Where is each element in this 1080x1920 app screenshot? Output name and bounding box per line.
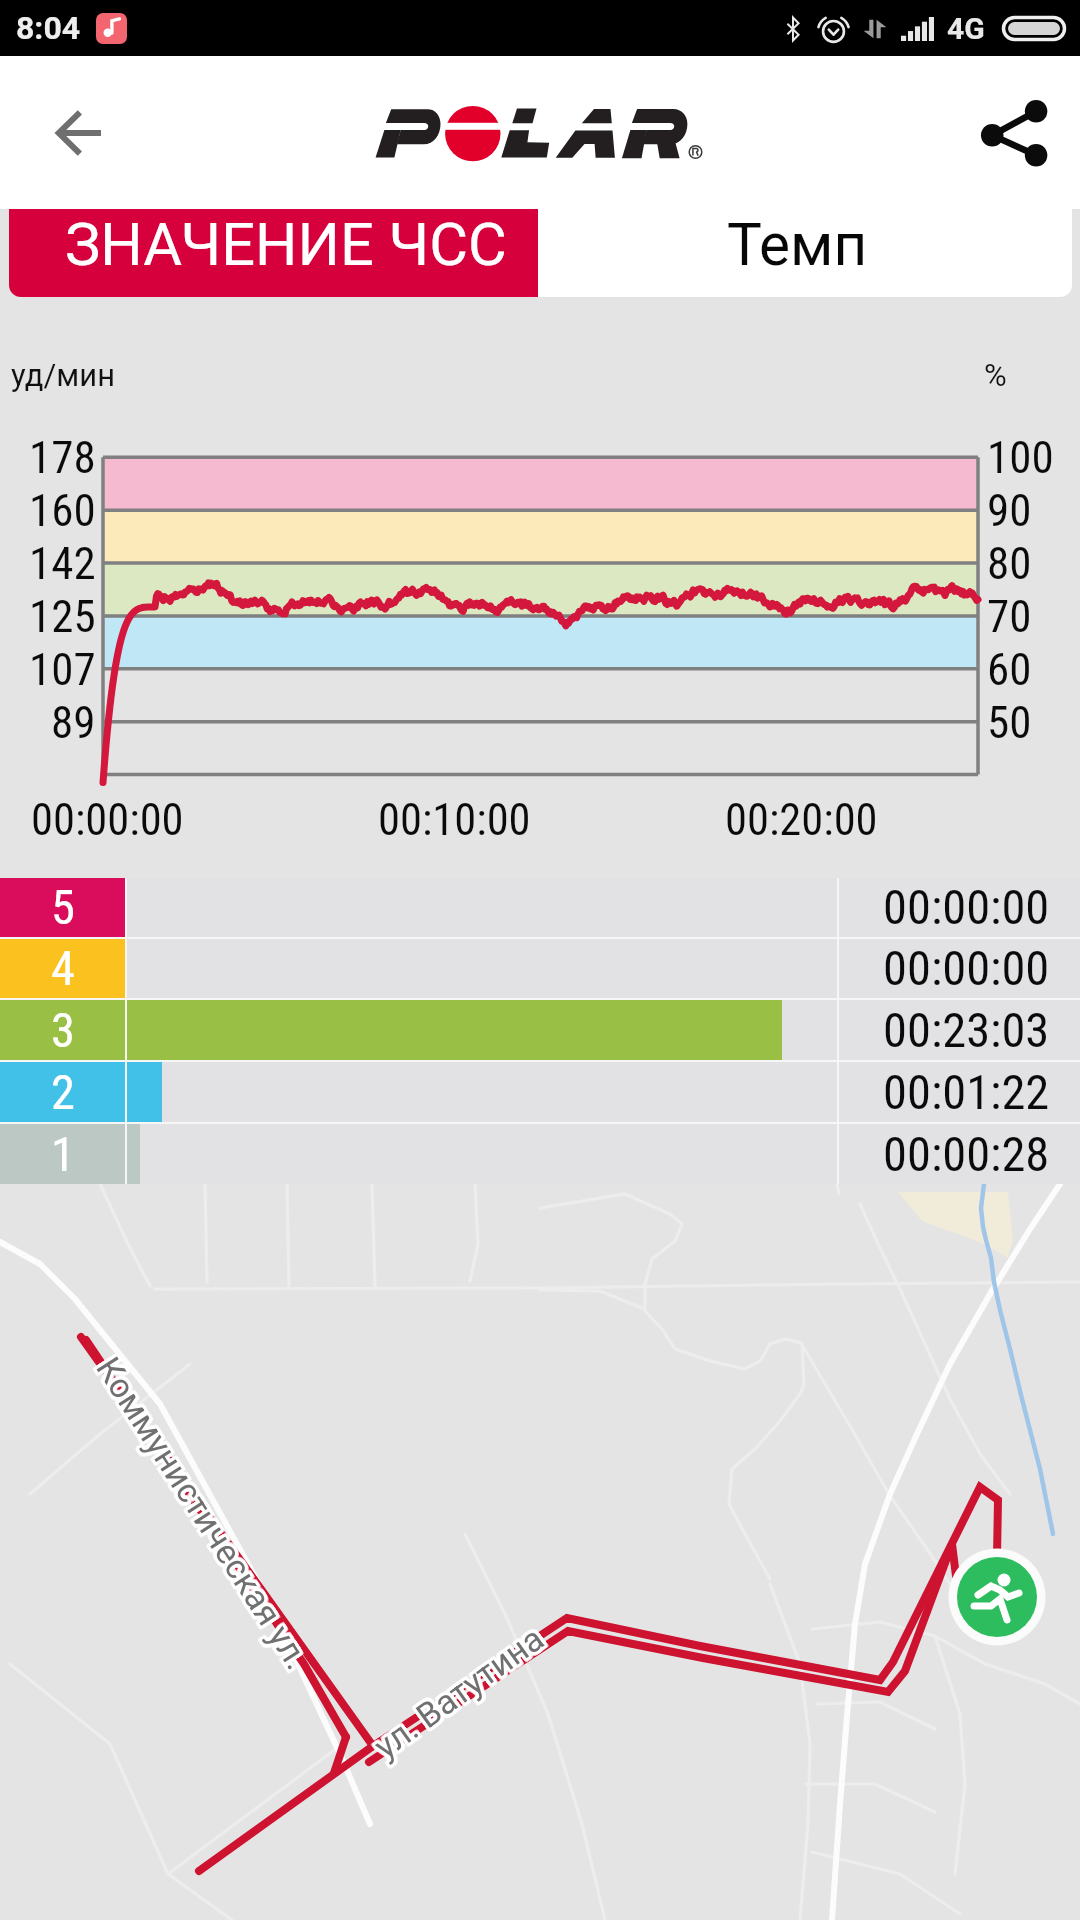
staticText: Коммунистическая ул.: [85, 1350, 315, 1678]
button[interactable]: ЗНАЧЕНИЕ ЧСС: [9, 209, 538, 297]
staticText: 50: [987, 696, 1032, 749]
staticText: ул. Ватутина: [365, 1615, 549, 1764]
staticText: Коммунистическая ул.: [91, 1349, 321, 1676]
staticText: ул. Ватутина: [368, 1615, 553, 1764]
staticText: ул. Ватутина: [365, 1621, 550, 1770]
staticText: Коммунистическая ул.: [88, 1352, 318, 1679]
staticText: Коммунистическая ул.: [90, 1351, 320, 1678]
staticText: Коммунистическая ул.: [87, 1353, 317, 1680]
staticText: ул. Ватутина: [366, 1616, 551, 1764]
staticText: Коммунистическая ул.: [89, 1348, 319, 1675]
staticText: 00:10:00: [378, 794, 531, 846]
staticText: ул. Ватутина: [370, 1619, 555, 1768]
staticText: ул. Ватутина: [369, 1616, 554, 1765]
staticText: Коммунистическая ул.: [89, 1353, 319, 1680]
staticText: 4: [51, 940, 75, 997]
staticText: 90: [987, 484, 1032, 537]
staticText: ул. Ватутина: [367, 1619, 552, 1768]
staticText: Коммунистическая ул.: [89, 1346, 319, 1673]
staticText: Коммунистическая ул.: [87, 1347, 316, 1674]
staticText: ул. Ватутина: [365, 1620, 550, 1768]
staticText: 60: [987, 643, 1032, 696]
staticText: ул. Ватутина: [368, 1620, 553, 1769]
staticText: Коммунистическая ул.: [89, 1347, 319, 1674]
staticText: ул. Ватутина: [366, 1622, 550, 1771]
staticText: 1: [51, 1126, 75, 1183]
staticText: уд/мин: [11, 357, 116, 393]
staticText: 142: [29, 537, 96, 590]
button[interactable]: Темп: [538, 209, 1072, 297]
staticText: ЗНАЧЕНИЕ ЧСС: [65, 210, 507, 280]
staticText: 107: [29, 643, 96, 696]
staticText: ул. Ватутина: [367, 1616, 552, 1764]
staticText: Коммунистическая ул.: [86, 1351, 315, 1678]
staticText: 3: [51, 1002, 75, 1059]
staticText: ул. Ватутина: [368, 1619, 553, 1767]
staticText: Коммунистическая ул.: [90, 1349, 320, 1677]
staticText: 5: [51, 879, 75, 936]
staticText: Коммунистическая ул.: [88, 1353, 318, 1680]
staticText: Коммунистическая ул.: [87, 1351, 316, 1678]
button[interactable]: Share: [969, 88, 1059, 178]
staticText: Коммунистическая ул.: [87, 1347, 317, 1674]
staticText: ул. Ватутина: [367, 1620, 552, 1769]
staticText: %: [984, 357, 1007, 393]
staticText: Коммунистическая ул.: [85, 1350, 314, 1677]
staticText: 00:20:00: [725, 794, 878, 846]
staticText: Коммунистическая ул.: [90, 1347, 320, 1674]
staticText: ул. Ватутина: [365, 1619, 550, 1768]
staticText: Коммунистическая ул.: [89, 1351, 319, 1678]
staticText: ул. Ватутина: [366, 1618, 551, 1766]
staticText: 00:00:00: [883, 940, 1050, 997]
staticText: Коммунистическая ул.: [88, 1350, 318, 1677]
staticText: 8:04: [16, 9, 81, 47]
staticText: Коммунистическая ул.: [91, 1352, 320, 1679]
staticText: Коммунистическая ул.: [90, 1352, 320, 1679]
staticText: 00:00:00: [31, 794, 184, 846]
staticText: ул. Ватутина: [363, 1617, 548, 1765]
staticText: 125: [29, 590, 96, 643]
staticText: Коммунистическая ул.: [92, 1351, 322, 1678]
staticText: ул. Ватутина: [364, 1617, 549, 1765]
staticText: 80: [987, 537, 1032, 590]
staticText: 160: [29, 484, 96, 537]
staticText: ул. Ватутина: [368, 1614, 552, 1763]
staticText: Коммунистическая ул.: [90, 1346, 319, 1673]
staticText: Коммунистическая ул.: [85, 1349, 315, 1676]
staticText: ул. Ватутина: [369, 1617, 554, 1766]
staticText: Коммунистическая ул.: [92, 1351, 321, 1678]
staticText: Коммунистическая ул.: [88, 1346, 318, 1673]
staticText: ул. Ватутина: [367, 1621, 552, 1769]
button[interactable]: Back: [35, 89, 123, 177]
staticText: Коммунистическая ул.: [88, 1347, 318, 1675]
staticText: Коммунистическая ул.: [87, 1352, 317, 1679]
staticText: Коммунистическая ул.: [84, 1349, 314, 1676]
staticText: Коммунистическая ул.: [92, 1350, 322, 1677]
staticText: 00:00:28: [883, 1126, 1050, 1183]
staticText: ул. Ватутина: [363, 1619, 548, 1767]
staticText: ул. Ватутина: [370, 1618, 555, 1766]
staticText: 00:00:00: [883, 879, 1050, 936]
staticText: ул. Ватутина: [366, 1614, 551, 1763]
staticText: ул. Ватутина: [363, 1617, 548, 1766]
staticText: Коммунистическая ул.: [85, 1348, 315, 1675]
staticText: Коммунистическая ул.: [91, 1350, 321, 1677]
staticText: ул. Ватутина: [363, 1618, 548, 1767]
staticText: Коммунистическая ул.: [87, 1354, 317, 1681]
staticText: ул. Ватутина: [366, 1621, 551, 1770]
staticText: Темп: [727, 211, 868, 280]
staticText: ул. Ватутина: [370, 1619, 555, 1767]
staticText: Коммунистическая ул.: [86, 1350, 316, 1677]
staticText: ул. Ватутина: [369, 1620, 554, 1768]
staticText: ул. Ватутина: [364, 1620, 549, 1769]
staticText: ул. Ватутина: [367, 1614, 552, 1762]
staticText: Коммунистическая ул.: [86, 1349, 316, 1676]
staticText: ул. Ватутина: [369, 1618, 554, 1767]
staticText: Коммунистическая ул.: [86, 1352, 316, 1679]
staticText: ул. Ватутина: [364, 1616, 549, 1765]
staticText: ул. Ватутина: [367, 1615, 552, 1764]
staticText: 00:23:03: [883, 1002, 1050, 1059]
staticText: ул. Ватутина: [368, 1617, 553, 1765]
staticText: ул. Ватутина: [365, 1616, 550, 1765]
staticText: 100: [987, 431, 1054, 484]
